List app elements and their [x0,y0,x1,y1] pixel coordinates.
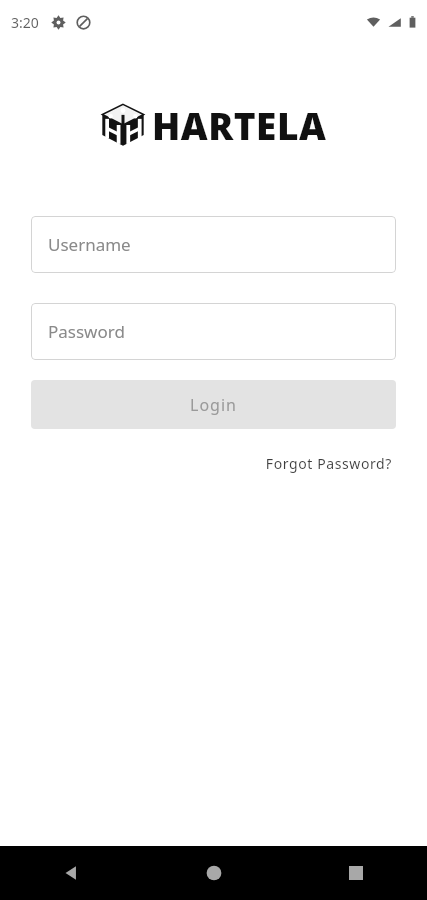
button[interactable]: Back [0,846,143,900]
button[interactable]: Username [31,216,396,273]
staticText: 3:20 [11,13,39,32]
button[interactable]: Password [31,303,396,360]
button[interactable]: Recent apps [285,846,427,900]
staticText: Login [190,394,237,416]
staticText: HARTELA [152,100,327,150]
button[interactable]: Forgot Password? [261,450,396,477]
button[interactable]: Home [143,846,285,900]
staticText: Forgot Password? [265,454,392,473]
staticText: Password [48,320,125,343]
button[interactable]: Login [31,380,396,429]
staticText: Username [48,233,131,256]
